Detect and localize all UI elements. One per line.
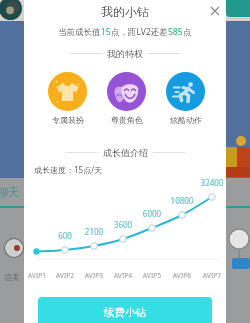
staticText: AVIP6 [166, 271, 198, 280]
staticText: 我的特权 [107, 48, 143, 59]
button[interactable]: 充费 [226, 0, 250, 17]
staticText: 600 [49, 230, 81, 241]
staticText: 2100 [78, 226, 110, 237]
staticText: 炫酷动作 [170, 115, 202, 125]
staticText: 我的小钻 [101, 4, 149, 19]
staticText: 32400 [196, 177, 228, 188]
staticText: AVIP1 [21, 271, 53, 280]
staticText: 6000 [136, 208, 168, 219]
staticText: 585 [168, 26, 183, 38]
staticText: 成长值介绍 [103, 147, 148, 158]
staticText: 10800 [166, 195, 198, 206]
staticText: 当前成长值 [58, 27, 101, 38]
staticText: AVIP2 [49, 271, 81, 280]
staticText: 尊贵角色 [111, 115, 143, 125]
staticText: 3600 [107, 219, 139, 230]
staticText: AVIP3 [78, 271, 110, 280]
staticText: 专属装扮 [52, 115, 84, 125]
staticText: AVIP5 [136, 271, 168, 280]
button[interactable]: 尊贵角色 [94, 72, 159, 125]
staticText: 15 [101, 26, 111, 38]
staticText: 点 [183, 27, 192, 38]
staticText: 尝美 [4, 272, 20, 282]
button[interactable]: 专属装扮 [35, 72, 100, 125]
button[interactable]: 炫酷动作 [153, 72, 218, 125]
staticText: 成长速度：15点/天 [34, 164, 103, 175]
staticText: 点，距LV2还差 [111, 26, 168, 38]
staticText: AVIP7 [196, 271, 228, 280]
button[interactable]: 续费小钻 [38, 297, 212, 323]
staticText: 聊天 [0, 185, 19, 199]
staticText: 续费小钻 [104, 306, 146, 319]
staticText: AVIP4 [107, 271, 139, 280]
button[interactable]: Close [206, 2, 224, 20]
